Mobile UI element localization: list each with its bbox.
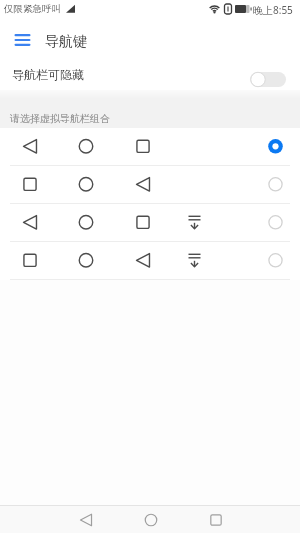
- button[interactable]: [0, 166, 300, 204]
- staticText: 导航键: [45, 33, 87, 51]
- button[interactable]: [0, 204, 300, 242]
- staticText: 仅限紧急呼叫: [4, 3, 61, 15]
- staticText: 晚上8:55: [253, 3, 293, 17]
- button[interactable]: [8, 26, 36, 54]
- button[interactable]: [0, 242, 300, 280]
- button[interactable]: [53, 506, 118, 533]
- staticText: 导航栏可隐藏: [12, 67, 84, 82]
- button[interactable]: [0, 128, 300, 166]
- button[interactable]: [183, 506, 248, 533]
- staticText: 请选择虚拟导航栏组合: [10, 112, 110, 125]
- button[interactable]: 导航栏可隐藏: [0, 58, 300, 90]
- button[interactable]: [118, 506, 183, 533]
